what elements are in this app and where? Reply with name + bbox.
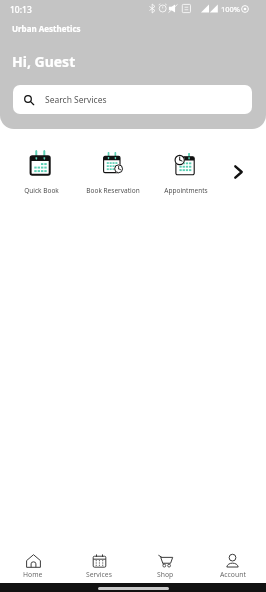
- staticText: Urban Aesthetics: [12, 23, 81, 34]
- button[interactable]: Services: [66, 549, 132, 583]
- button[interactable]: More services: [226, 160, 250, 184]
- staticText: Search Services: [45, 94, 107, 106]
- button[interactable]: Search Services: [13, 85, 252, 114]
- button[interactable]: Appointments: [144, 148, 228, 195]
- staticText: 100%: [221, 4, 241, 14]
- staticText: Home: [23, 570, 43, 579]
- button[interactable]: Home: [0, 549, 66, 583]
- staticText: Services: [86, 570, 112, 579]
- staticText: Quick Book: [24, 186, 59, 195]
- staticText: Appointments: [164, 186, 208, 195]
- staticText: 10:13: [10, 4, 32, 16]
- button[interactable]: Account: [199, 549, 266, 583]
- button[interactable]: Book Reservation: [71, 148, 155, 195]
- staticText: Book Reservation: [86, 186, 140, 195]
- staticText: Hi, Guest: [12, 52, 76, 71]
- staticText: Shop: [157, 570, 174, 579]
- button[interactable]: Shop: [132, 549, 199, 583]
- button[interactable]: Quick Book: [0, 148, 83, 195]
- staticText: Account: [220, 570, 246, 579]
